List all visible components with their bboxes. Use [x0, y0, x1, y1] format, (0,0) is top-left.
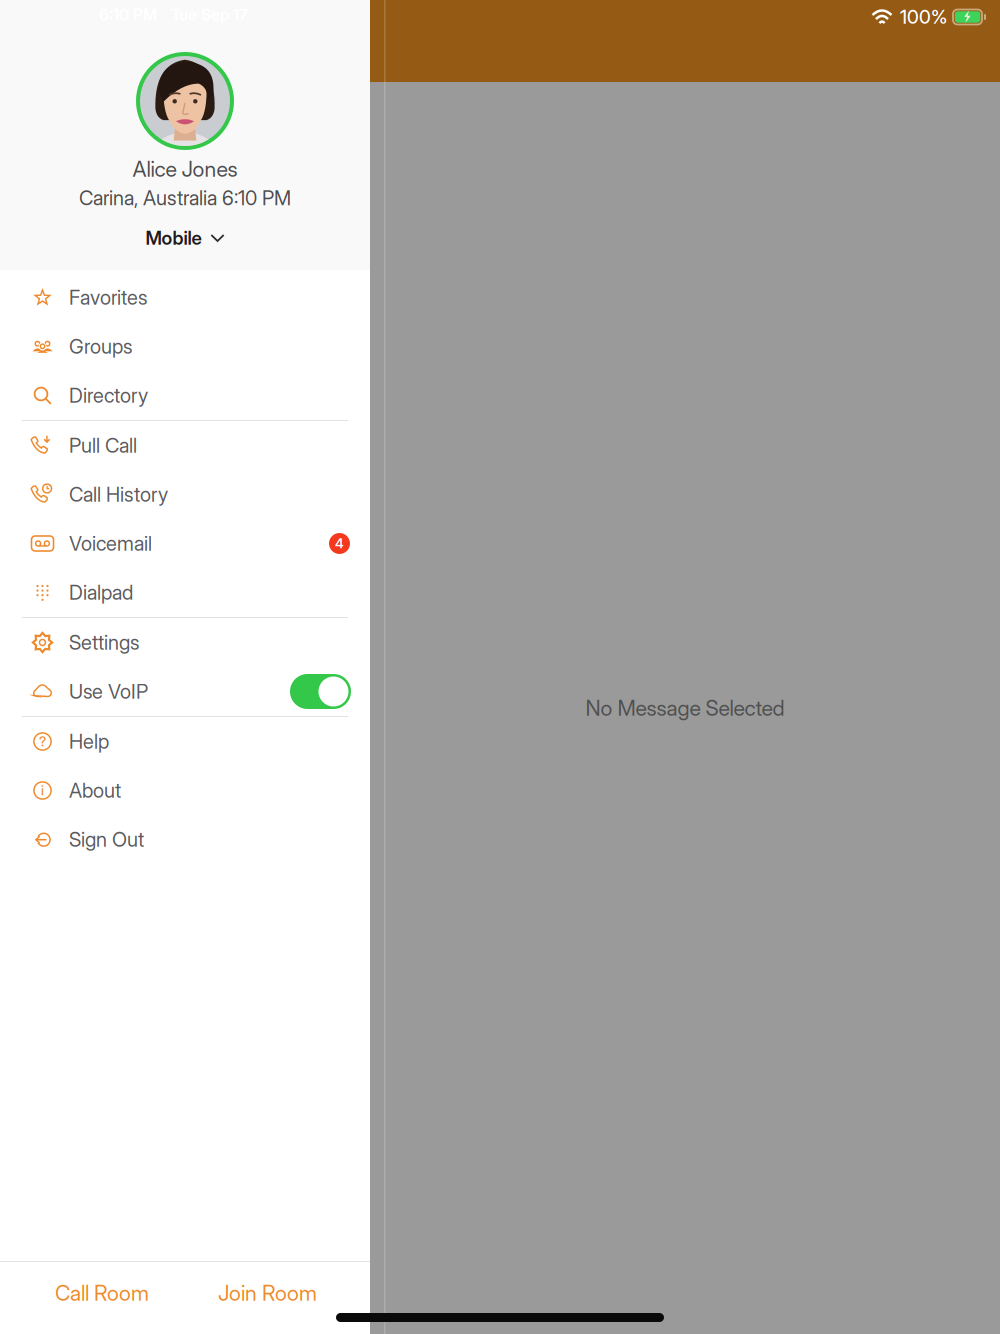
- button[interactable]: Pull Call: [0, 421, 370, 470]
- staticText: Join Room: [218, 1280, 317, 1306]
- staticText: Carina, Australia 6:10 PM: [79, 186, 291, 210]
- staticText: Settings: [69, 630, 139, 655]
- button[interactable]: ?: [0, 717, 370, 766]
- staticText: No Message Selected: [585, 695, 784, 721]
- button[interactable]: Call Room: [29, 1262, 175, 1324]
- staticText: 4: [335, 535, 344, 551]
- staticText: Help: [69, 729, 109, 754]
- button[interactable]: Directory: [0, 371, 370, 420]
- staticText: i: [41, 782, 44, 798]
- staticText: Mobile: [145, 227, 201, 249]
- staticText: Call History: [69, 482, 168, 507]
- staticText: Alice Jones: [132, 156, 237, 182]
- staticText: Sign Out: [69, 827, 144, 852]
- button[interactable]: Voicemail: [0, 519, 370, 568]
- button[interactable]: Mobile: [145, 208, 224, 268]
- button[interactable]: Groups: [0, 322, 370, 371]
- button[interactable]: Sign Out: [0, 815, 370, 864]
- button[interactable]: Join Room: [194, 1262, 341, 1324]
- staticText: Groups: [69, 334, 132, 359]
- staticText: Favorites: [69, 285, 147, 310]
- staticText: 100%: [900, 6, 947, 28]
- button[interactable]: Use VoIP: [0, 667, 370, 716]
- staticText: Directory: [69, 383, 148, 408]
- staticText: Pull Call: [69, 433, 137, 458]
- staticText: About: [69, 778, 121, 803]
- button[interactable]: Settings: [0, 618, 370, 667]
- button[interactable]: Dialpad: [0, 568, 370, 617]
- staticText: Dialpad: [69, 580, 133, 605]
- button[interactable]: Favorites: [0, 273, 370, 322]
- staticText: ?: [39, 733, 46, 749]
- staticText: Voicemail: [69, 531, 152, 556]
- button[interactable]: i: [0, 766, 370, 815]
- staticText: Call Room: [55, 1280, 149, 1306]
- staticText: Use VoIP: [69, 679, 148, 704]
- button[interactable]: Call History: [0, 470, 370, 519]
